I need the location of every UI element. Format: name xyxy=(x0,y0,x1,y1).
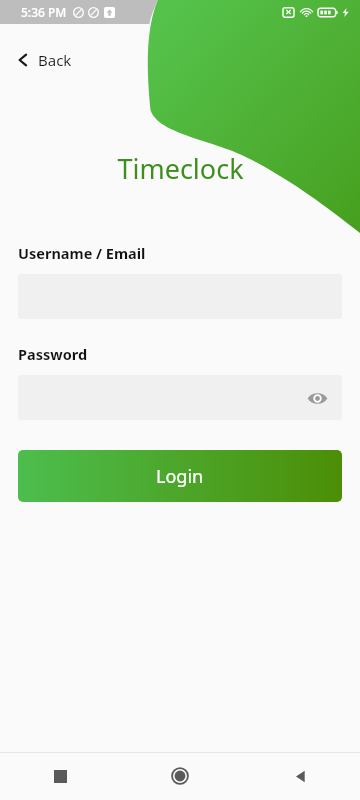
button[interactable]: Back xyxy=(240,752,360,800)
staticText: 5:36 PM xyxy=(21,4,67,20)
staticText: Password xyxy=(18,344,88,364)
button[interactable]: Show password xyxy=(18,375,342,420)
staticText: Timeclock xyxy=(117,150,244,187)
button[interactable]: Back xyxy=(8,44,80,76)
staticText: Back xyxy=(38,50,72,70)
button[interactable]: Recent apps xyxy=(0,752,120,800)
button[interactable]: Home xyxy=(120,752,240,800)
button[interactable]: Login xyxy=(18,450,342,502)
button[interactable]: Show password xyxy=(304,385,330,411)
staticText: Login xyxy=(156,464,204,489)
staticText: Username / Email xyxy=(18,243,146,263)
